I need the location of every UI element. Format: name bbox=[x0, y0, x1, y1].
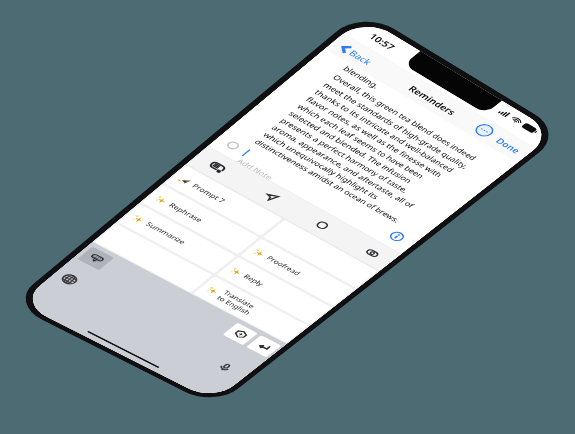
button[interactable]: Summarize bbox=[6, 268, 96, 295]
button[interactable]: Reply bbox=[98, 268, 189, 295]
button[interactable] bbox=[6, 297, 96, 324]
button[interactable]: Prompt 7 bbox=[6, 212, 96, 238]
button[interactable]: Rephrase bbox=[6, 240, 96, 266]
button[interactable]: Proofread bbox=[98, 240, 189, 266]
staticText: Summarize bbox=[23, 277, 58, 286]
staticText: Proofread bbox=[115, 249, 146, 258]
button[interactable]: Info bbox=[169, 166, 180, 177]
button[interactable]: Dictate bbox=[164, 371, 177, 384]
button[interactable]: Markup bbox=[116, 191, 131, 206]
button[interactable]: Camera bbox=[165, 191, 180, 206]
button[interactable] bbox=[98, 212, 189, 238]
